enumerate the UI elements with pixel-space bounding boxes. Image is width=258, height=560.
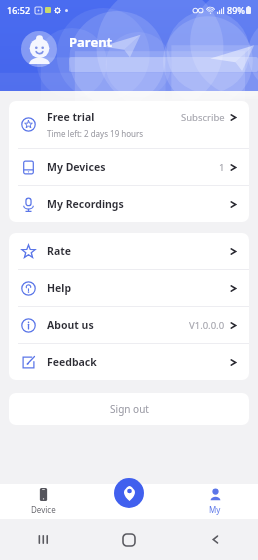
staticText: About us xyxy=(47,318,189,332)
button[interactable]: Recent apps xyxy=(0,519,86,560)
button[interactable]: Profile avatar xyxy=(21,31,57,67)
button[interactable]: Device xyxy=(0,484,86,519)
button[interactable]: Sign out xyxy=(9,393,249,425)
staticText: Device xyxy=(31,504,56,515)
button[interactable]: About us xyxy=(9,307,249,343)
staticText: My Devices xyxy=(47,160,219,174)
button[interactable]: Help xyxy=(9,270,249,306)
button[interactable]: My Recordings xyxy=(9,186,249,222)
staticText: My xyxy=(209,504,221,515)
button[interactable]: Rate xyxy=(9,233,249,269)
button[interactable]: Back xyxy=(172,519,258,560)
staticText: My Recordings xyxy=(47,197,230,211)
staticText: Help xyxy=(47,281,230,295)
button[interactable]: Locate xyxy=(86,484,172,519)
button[interactable]: My Devices xyxy=(9,149,249,185)
staticText: Parent xyxy=(69,33,113,51)
staticText: Sign out xyxy=(110,402,149,416)
button[interactable]: My xyxy=(172,484,258,519)
staticText: Time left: 2 days 19 hours xyxy=(47,128,144,139)
staticText: 16:52 xyxy=(7,4,31,16)
button[interactable]: Home xyxy=(86,519,172,560)
staticText: 89% xyxy=(227,4,245,16)
button[interactable]: Feedback xyxy=(9,344,249,380)
button[interactable]: Locate xyxy=(114,478,144,508)
staticText: 1 xyxy=(219,161,225,174)
staticText: V1.0.0.0 xyxy=(189,319,225,332)
staticText: Rate xyxy=(47,244,230,258)
staticText: Feedback xyxy=(47,355,230,369)
staticText: Free trial xyxy=(47,110,95,124)
button[interactable]: Free trial xyxy=(9,101,249,148)
staticText: Subscribe xyxy=(181,111,225,124)
